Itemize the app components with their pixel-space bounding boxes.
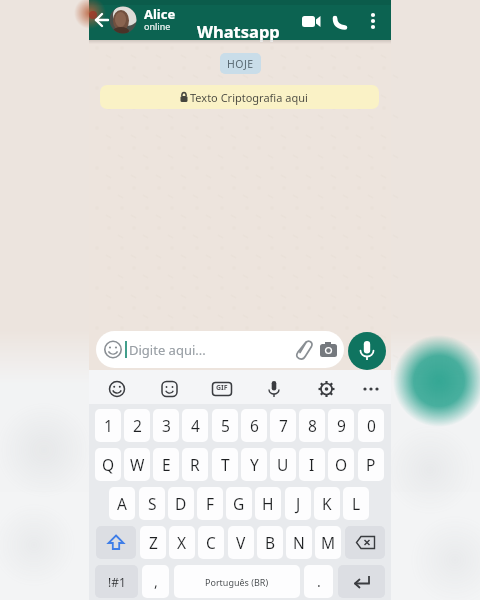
button[interactable]: 3: [153, 409, 179, 442]
button[interactable]: 5: [212, 409, 238, 442]
button[interactable]: F: [197, 487, 223, 520]
staticText: 5: [221, 415, 230, 436]
button[interactable]: [311, 372, 341, 402]
button[interactable]: S: [139, 487, 165, 520]
staticText: F: [206, 493, 215, 514]
staticText: .: [317, 572, 321, 591]
button[interactable]: Português (BR): [174, 565, 300, 598]
button[interactable]: [348, 332, 386, 370]
staticText: Whatsapp: [197, 20, 280, 42]
staticText: J: [296, 493, 301, 514]
button[interactable]: X: [169, 526, 195, 559]
button[interactable]: Z: [140, 526, 166, 559]
button[interactable]: [259, 372, 289, 402]
button[interactable]: Digite aqui...: [96, 331, 344, 368]
staticText: 1: [104, 415, 113, 436]
staticText: 3: [162, 415, 171, 436]
button[interactable]: [103, 372, 133, 402]
button[interactable]: H: [255, 487, 281, 520]
button[interactable]: D: [168, 487, 194, 520]
button[interactable]: W: [124, 448, 150, 481]
button[interactable]: Y: [241, 448, 267, 481]
staticText: 4: [191, 415, 200, 436]
staticText: T: [221, 454, 230, 475]
button[interactable]: 0: [358, 409, 384, 442]
button[interactable]: J: [285, 487, 311, 520]
button[interactable]: [207, 372, 237, 402]
staticText: O: [335, 454, 348, 475]
button[interactable]: [363, 8, 383, 34]
staticText: Digite aqui...: [129, 341, 206, 359]
button[interactable]: 7: [270, 409, 296, 442]
staticText: Z: [149, 532, 158, 553]
button[interactable]: .: [304, 565, 333, 598]
button[interactable]: Q: [95, 448, 121, 481]
staticText: M: [321, 532, 336, 553]
button[interactable]: R: [182, 448, 208, 481]
staticText: Q: [102, 454, 115, 475]
button[interactable]: O: [328, 448, 354, 481]
staticText: G: [233, 493, 245, 514]
button[interactable]: 1: [95, 409, 121, 442]
button[interactable]: E: [153, 448, 179, 481]
button[interactable]: V: [228, 526, 254, 559]
button[interactable]: !#1: [95, 565, 138, 598]
staticText: online: [144, 20, 171, 32]
staticText: B: [265, 532, 276, 553]
button[interactable]: ,: [142, 565, 169, 598]
staticText: K: [322, 493, 332, 514]
button[interactable]: 6: [241, 409, 267, 442]
button[interactable]: N: [286, 526, 312, 559]
staticText: D: [175, 493, 187, 514]
staticText: 7: [279, 415, 288, 436]
staticText: X: [177, 532, 187, 553]
staticText: 8: [308, 415, 317, 436]
button[interactable]: [89, 0, 129, 40]
button[interactable]: C: [198, 526, 224, 559]
button[interactable]: [155, 372, 185, 402]
staticText: I: [309, 454, 315, 475]
staticText: S: [148, 493, 157, 514]
button[interactable]: [329, 10, 353, 32]
staticText: 9: [337, 415, 346, 436]
staticText: U: [277, 454, 289, 475]
button[interactable]: T: [212, 448, 238, 481]
staticText: L: [352, 493, 361, 514]
button[interactable]: 8: [299, 409, 325, 442]
staticText: H: [262, 493, 274, 514]
staticText: W: [130, 454, 145, 475]
button[interactable]: M: [315, 526, 341, 559]
button[interactable]: [345, 526, 385, 559]
button[interactable]: B: [257, 526, 283, 559]
button[interactable]: A: [109, 487, 135, 520]
button[interactable]: [338, 565, 385, 598]
staticText: N: [293, 532, 305, 553]
button[interactable]: 2: [124, 409, 150, 442]
button[interactable]: U: [270, 448, 296, 481]
button[interactable]: Texto Criptografia aqui: [100, 85, 379, 109]
button[interactable]: K: [314, 487, 340, 520]
staticText: HOJE: [227, 57, 254, 71]
staticText: Alice: [144, 5, 176, 23]
button[interactable]: L: [343, 487, 369, 520]
staticText: ,: [154, 572, 158, 591]
staticText: Português (BR): [205, 576, 269, 588]
staticText: Texto Criptografia aqui: [190, 90, 308, 105]
staticText: 0: [367, 415, 376, 436]
button[interactable]: [297, 10, 325, 32]
staticText: !#1: [108, 574, 126, 590]
button[interactable]: 9: [328, 409, 354, 442]
staticText: R: [190, 454, 200, 475]
staticText: V: [236, 532, 246, 553]
button[interactable]: [363, 372, 393, 402]
staticText: A: [117, 493, 127, 514]
button[interactable]: P: [358, 448, 384, 481]
staticText: 2: [133, 415, 142, 436]
staticText: 6: [250, 415, 259, 436]
button[interactable]: I: [299, 448, 325, 481]
button[interactable]: 4: [182, 409, 208, 442]
staticText: Y: [250, 454, 259, 475]
button[interactable]: G: [226, 487, 252, 520]
staticText: GIF: [216, 383, 228, 393]
button[interactable]: [96, 526, 136, 559]
